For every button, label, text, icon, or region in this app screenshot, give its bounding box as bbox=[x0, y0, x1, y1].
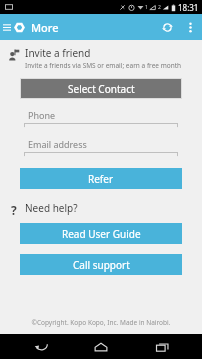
button[interactable]: Back bbox=[21, 334, 61, 359]
button[interactable]: Email address bbox=[24, 138, 178, 156]
staticText: Refer bbox=[88, 172, 114, 186]
staticText: Read User Guide bbox=[62, 227, 141, 241]
button[interactable]: Select Contact bbox=[20, 78, 182, 99]
staticText: Select Contact bbox=[68, 82, 135, 96]
staticText: Invite a friends via SMS or email; earn … bbox=[25, 61, 182, 70]
staticText: Email address bbox=[28, 138, 87, 150]
staticText: Call support bbox=[73, 258, 130, 272]
button[interactable]: Read User Guide bbox=[20, 223, 182, 244]
other: App logo bbox=[13, 21, 26, 34]
staticText: 18:31 bbox=[178, 2, 199, 13]
staticText: Need help? bbox=[25, 201, 78, 215]
staticText: More bbox=[31, 20, 59, 35]
button[interactable]: Recent apps bbox=[142, 334, 182, 359]
staticText: 2 bbox=[158, 4, 161, 11]
button[interactable]: Open navigation drawer bbox=[0, 14, 13, 40]
staticText: Invite a friend bbox=[25, 46, 91, 60]
staticText: Phone bbox=[28, 109, 56, 121]
button[interactable]: Refer bbox=[20, 168, 182, 189]
staticText: 1 bbox=[145, 4, 148, 11]
button[interactable]: Home bbox=[81, 334, 121, 359]
staticText: ©Copyright. Kopo Kopo, Inc. Made in Nair… bbox=[0, 318, 202, 327]
button[interactable]: Phone bbox=[24, 109, 178, 127]
button[interactable]: Refresh bbox=[154, 14, 180, 40]
button[interactable]: Call support bbox=[20, 254, 182, 275]
button[interactable]: More options bbox=[180, 14, 200, 40]
staticText: ? bbox=[11, 202, 17, 218]
